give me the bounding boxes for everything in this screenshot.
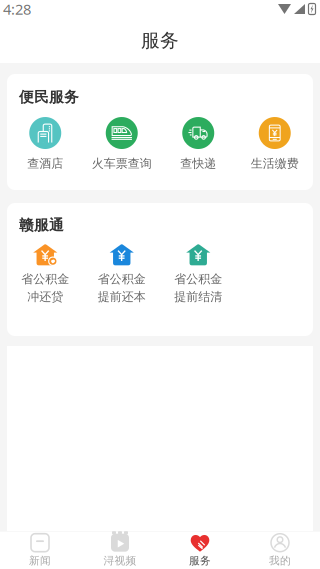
button[interactable]: 省公积金 [83, 244, 160, 304]
staticText: 省公积金 [174, 272, 222, 286]
staticText: 我的 [269, 554, 291, 567]
staticText: 冲还贷 [27, 289, 63, 304]
button[interactable]: 新闻 [0, 531, 80, 569]
staticText: 服务 [189, 554, 211, 567]
staticText: 查酒店 [27, 156, 63, 171]
button[interactable]: 省公积金 [7, 244, 83, 304]
staticText: 提前结清 [174, 289, 222, 304]
staticText: 浔视频 [103, 554, 136, 567]
button[interactable]: 火车票查询 [83, 117, 160, 171]
button[interactable]: 服务 [160, 531, 240, 569]
staticText: 火车票查询 [92, 156, 152, 171]
button[interactable]: 省公积金 [160, 244, 236, 304]
staticText: 便民服务 [19, 88, 79, 106]
staticText: 4:28 [3, 0, 31, 19]
button[interactable]: 生活缴费 [236, 117, 313, 171]
staticText: 赣服通 [19, 216, 64, 234]
button[interactable]: 查酒店 [7, 117, 83, 171]
staticText: 生活缴费 [251, 156, 299, 171]
staticText: 服务 [141, 29, 179, 52]
staticText: 提前还本 [98, 289, 146, 304]
button[interactable]: 查快递 [160, 117, 236, 171]
staticText: 省公积金 [98, 272, 146, 286]
staticText: 查快递 [180, 156, 216, 171]
button[interactable]: 我的 [240, 531, 320, 569]
staticText: 新闻 [29, 554, 51, 567]
staticText: 省公积金 [21, 272, 69, 286]
button[interactable]: 浔视频 [80, 531, 160, 569]
